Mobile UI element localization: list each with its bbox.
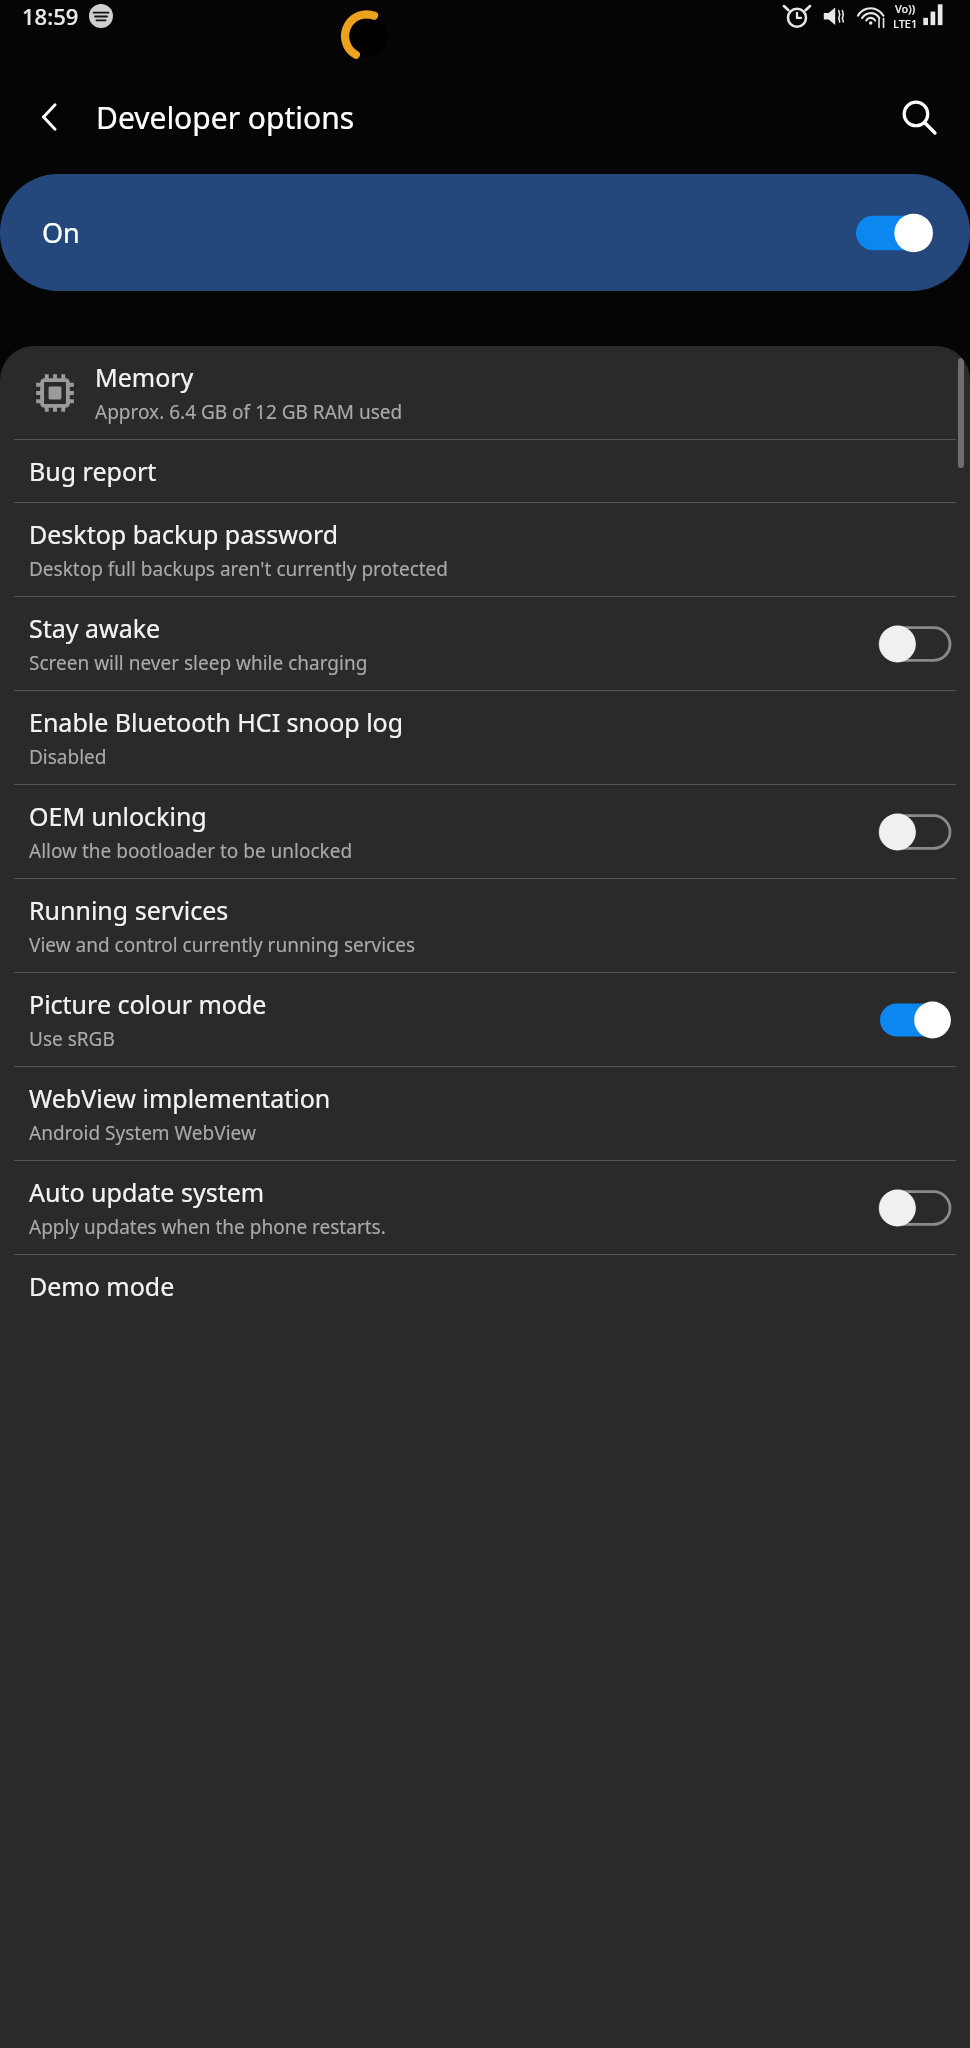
staticText: Desktop backup password [29, 517, 339, 551]
staticText: Desktop full backups aren't currently pr… [29, 556, 449, 582]
staticText: Stay awake [29, 611, 161, 645]
button[interactable]: Enable Bluetooth HCI snoop log [0, 691, 970, 784]
staticText: Allow the bootloader to be unlocked [29, 838, 353, 864]
staticText: LTE1 [893, 16, 918, 31]
button[interactable]: Back [20, 86, 82, 148]
button[interactable]: Auto update system [0, 1161, 970, 1254]
staticText: Vo)) [895, 1, 916, 16]
staticText: Running services [29, 893, 229, 927]
button[interactable]: On [0, 174, 970, 291]
staticText: Picture colour mode [29, 987, 267, 1021]
button[interactable]: Bug report [0, 440, 970, 502]
staticText: Developer options [96, 97, 355, 138]
staticText: Use sRGB [29, 1026, 115, 1052]
staticText: Enable Bluetooth HCI snoop log [29, 705, 404, 739]
button[interactable]: OEM unlocking [0, 785, 970, 878]
button[interactable]: Picture colour mode [0, 973, 970, 1066]
staticText: Screen will never sleep while charging [29, 650, 368, 676]
staticText: Disabled [29, 744, 107, 770]
button[interactable]: Running services [0, 879, 970, 972]
button[interactable]: Stay awake [0, 597, 970, 690]
staticText: Auto update system [29, 1175, 265, 1209]
staticText: Approx. 6.4 GB of 12 GB RAM used [95, 399, 403, 425]
staticText: 18:59 [22, 1, 79, 31]
staticText: OEM unlocking [29, 799, 207, 833]
button[interactable]: WebView implementation [0, 1067, 970, 1160]
staticText: WebView implementation [29, 1081, 331, 1115]
staticText: Apply updates when the phone restarts. [29, 1214, 386, 1240]
button[interactable]: Demo mode [0, 1255, 970, 1317]
staticText: Demo mode [29, 1269, 175, 1303]
staticText: Android System WebView [29, 1120, 256, 1146]
button[interactable]: Memory [0, 346, 970, 439]
staticText: Bug report [29, 454, 157, 488]
button[interactable]: Search [888, 86, 950, 148]
staticText: Memory [95, 360, 194, 394]
staticText: On [42, 214, 80, 251]
button[interactable]: Desktop backup password [0, 503, 970, 596]
staticText: View and control currently running servi… [29, 932, 416, 958]
